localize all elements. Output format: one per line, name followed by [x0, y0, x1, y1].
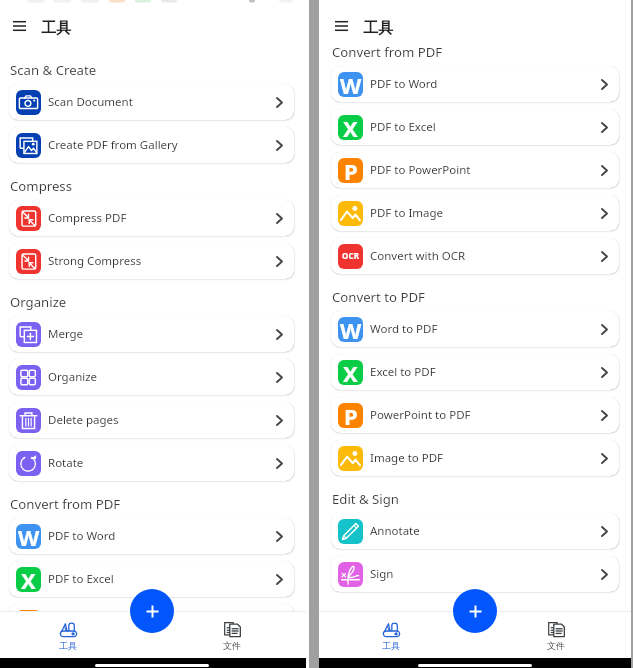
button[interactable]: PDF to Image	[331, 195, 619, 231]
staticText: W	[340, 72, 362, 95]
button[interactable]: W	[331, 66, 619, 102]
button[interactable]: P	[331, 152, 619, 188]
button[interactable]: Create	[130, 589, 174, 633]
staticText: Sign	[370, 566, 394, 582]
staticText: P	[344, 403, 358, 426]
staticText: Annotate	[370, 523, 420, 539]
staticText: PDF to Image	[370, 205, 444, 221]
button[interactable]: W	[9, 518, 294, 554]
button[interactable]: 工具	[319, 612, 463, 658]
button[interactable]: Rotate	[9, 445, 294, 481]
staticText: Strong Compress	[48, 253, 142, 269]
staticText: Convert to PDF	[332, 288, 425, 306]
button[interactable]: Image to PDF	[331, 440, 619, 476]
staticText: 工具	[363, 19, 393, 38]
staticText: Rotate	[48, 455, 84, 471]
button[interactable]: Compress PDF	[9, 200, 294, 236]
button[interactable]: Delete pages	[9, 402, 294, 438]
button[interactable]: OCR	[331, 238, 619, 274]
button[interactable]: P	[331, 397, 619, 433]
staticText: Word to PDF	[370, 321, 438, 337]
staticText: Convert from PDF	[10, 495, 121, 513]
staticText: X	[21, 567, 36, 590]
button[interactable]: 文件	[481, 612, 631, 658]
staticText: X	[343, 115, 358, 138]
button[interactable]: X	[331, 109, 619, 145]
button[interactable]: Create	[453, 589, 497, 633]
staticText: 工具	[382, 640, 400, 651]
staticText: PDF to Excel	[370, 119, 436, 135]
button[interactable]: Organize	[9, 359, 294, 395]
staticText: Scan & Create	[10, 61, 97, 79]
staticText: Merge	[48, 326, 84, 342]
staticText: 工具	[41, 19, 71, 38]
button[interactable]: 工具	[0, 612, 139, 658]
staticText: PDF to Word	[48, 528, 116, 544]
staticText: 文件	[547, 640, 565, 651]
staticText: Excel to PDF	[370, 364, 436, 380]
staticText: Organize	[10, 293, 67, 311]
staticText: PDF to Word	[370, 76, 438, 92]
staticText: 文件	[223, 640, 241, 651]
staticText: OCR	[342, 250, 360, 261]
staticText: P	[22, 610, 36, 611]
button[interactable]: Sign	[331, 556, 619, 592]
staticText: Convert from PDF	[332, 44, 443, 61]
button[interactable]: X	[9, 561, 294, 597]
button[interactable]: Strong Compress	[9, 243, 294, 279]
staticText: PDF to Excel	[48, 571, 114, 587]
staticText: W	[18, 524, 40, 547]
staticText: Compress PDF	[48, 210, 127, 226]
staticText: Image to PDF	[370, 450, 444, 466]
staticText: PDF to PowerPoint	[370, 162, 471, 178]
staticText: Delete pages	[48, 412, 119, 428]
staticText: PowerPoint to PDF	[370, 407, 471, 423]
button[interactable]: 文件	[158, 612, 306, 658]
staticText: X	[343, 360, 358, 383]
staticText: Scan Document	[48, 94, 133, 110]
staticText: Convert with OCR	[370, 248, 466, 264]
button[interactable]: W	[331, 311, 619, 347]
staticText: Organize	[48, 369, 98, 385]
button[interactable]: X	[331, 354, 619, 390]
button[interactable]: Menu	[6, 13, 32, 39]
button[interactable]: Scan Document	[9, 84, 294, 120]
button[interactable]: Annotate	[331, 513, 619, 549]
staticText: Edit & Sign	[332, 490, 400, 508]
button[interactable]: Create PDF from Gallery	[9, 127, 294, 163]
button[interactable]: Merge	[9, 316, 294, 352]
button[interactable]: Menu	[328, 13, 354, 39]
staticText: Compress	[10, 177, 73, 195]
button[interactable]: P	[9, 604, 294, 611]
staticText: W	[340, 317, 362, 340]
staticText: 工具	[59, 640, 77, 651]
staticText: P	[344, 158, 358, 181]
staticText: Create PDF from Gallery	[48, 137, 178, 153]
